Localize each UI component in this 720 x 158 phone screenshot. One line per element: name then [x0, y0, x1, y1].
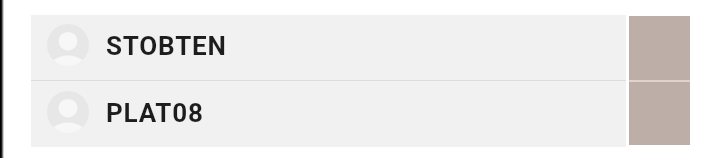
staticText: STOBTEN: [106, 31, 227, 61]
staticText: PLAT08: [106, 98, 204, 128]
button[interactable]: STOBTEN: [31, 15, 626, 80]
button[interactable]: PLAT08: [31, 81, 626, 147]
